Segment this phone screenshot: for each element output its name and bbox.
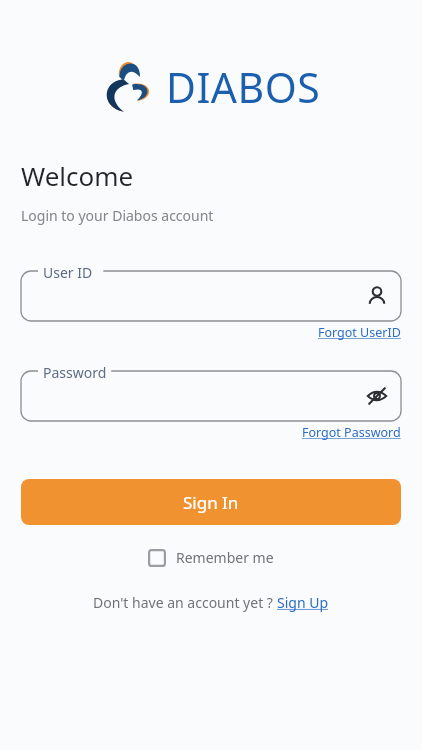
button[interactable]: Sign In [21, 479, 401, 525]
staticText: Forgot UserID [318, 324, 401, 341]
button[interactable] [21, 271, 401, 321]
button[interactable]: Sign Up [277, 593, 329, 612]
button[interactable]: User ID [363, 282, 391, 310]
staticText: User ID [43, 263, 93, 282]
button[interactable]: Show password [363, 382, 391, 410]
staticText: Don't have an account yet ? [93, 593, 277, 612]
staticText: Password [43, 363, 107, 382]
staticText: Remember me [176, 548, 274, 567]
staticText: Sign Up [277, 593, 329, 612]
staticText: Welcome [21, 158, 134, 193]
button[interactable] [21, 371, 401, 421]
staticText: Forgot Password [302, 424, 401, 441]
button[interactable]: Remember me [144, 544, 278, 571]
staticText: Login to your Diabos account [21, 206, 214, 225]
staticText: Sign In [183, 491, 239, 514]
button[interactable]: Forgot UserID [318, 324, 401, 341]
staticText: DIABOS [166, 59, 321, 115]
button[interactable]: Forgot Password [302, 424, 401, 441]
